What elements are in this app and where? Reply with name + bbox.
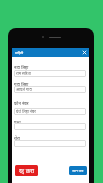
staticText: रद्द करा: [19, 167, 35, 175]
button[interactable]: रद्द करा: [15, 165, 38, 176]
button[interactable]: आपले गाव: [14, 86, 86, 93]
staticText: नाव लिहा: [14, 65, 29, 71]
button[interactable]: [14, 140, 86, 147]
staticText: माहिती: [15, 51, 24, 55]
staticText: जतन करा: [72, 169, 84, 173]
button[interactable]: येथे लिहा नंबर: [14, 108, 86, 115]
button[interactable]: जतन करा: [69, 166, 87, 175]
staticText: आपले गाव: [16, 87, 32, 92]
staticText: येथे लिहा नंबर: [16, 109, 37, 114]
button[interactable]: माहिती: [12, 48, 89, 57]
button[interactable]: राम सरिता: [14, 70, 86, 77]
staticText: राम सरिता: [16, 71, 31, 76]
button[interactable]: [14, 123, 86, 130]
staticText: शेरा: [14, 136, 20, 142]
button[interactable]: Close: [81, 49, 88, 56]
staticText: पत्ता: [14, 120, 21, 126]
staticText: गाव लिहा: [14, 82, 29, 88]
staticText: फोन नंबर: [14, 101, 29, 107]
